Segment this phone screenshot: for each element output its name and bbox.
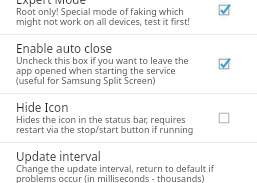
staticText: Expert Mode — [16, 0, 86, 7]
button[interactable]: Checkbox, checked — [210, 0, 238, 24]
staticText: Hides the icon in the status bar, requir… — [16, 115, 206, 135]
button[interactable]: Hide Icon — [0, 94, 257, 142]
button[interactable]: Enable auto close — [0, 35, 257, 93]
staticText: Change the update interval, return to de… — [16, 164, 231, 183]
staticText: Hide Icon — [16, 101, 69, 115]
staticText: Enable auto close — [16, 42, 113, 56]
button[interactable]: Expert Mode — [0, 0, 257, 34]
staticText: Uncheck this box if you want to leave th… — [16, 56, 206, 86]
staticText: Root only! Special mode of faking which … — [16, 7, 206, 27]
button[interactable]: Update interval — [0, 143, 257, 183]
staticText: Update interval — [16, 150, 101, 164]
button[interactable]: Checkbox, unchecked — [210, 104, 238, 132]
button[interactable]: Checkbox, checked — [210, 50, 238, 78]
